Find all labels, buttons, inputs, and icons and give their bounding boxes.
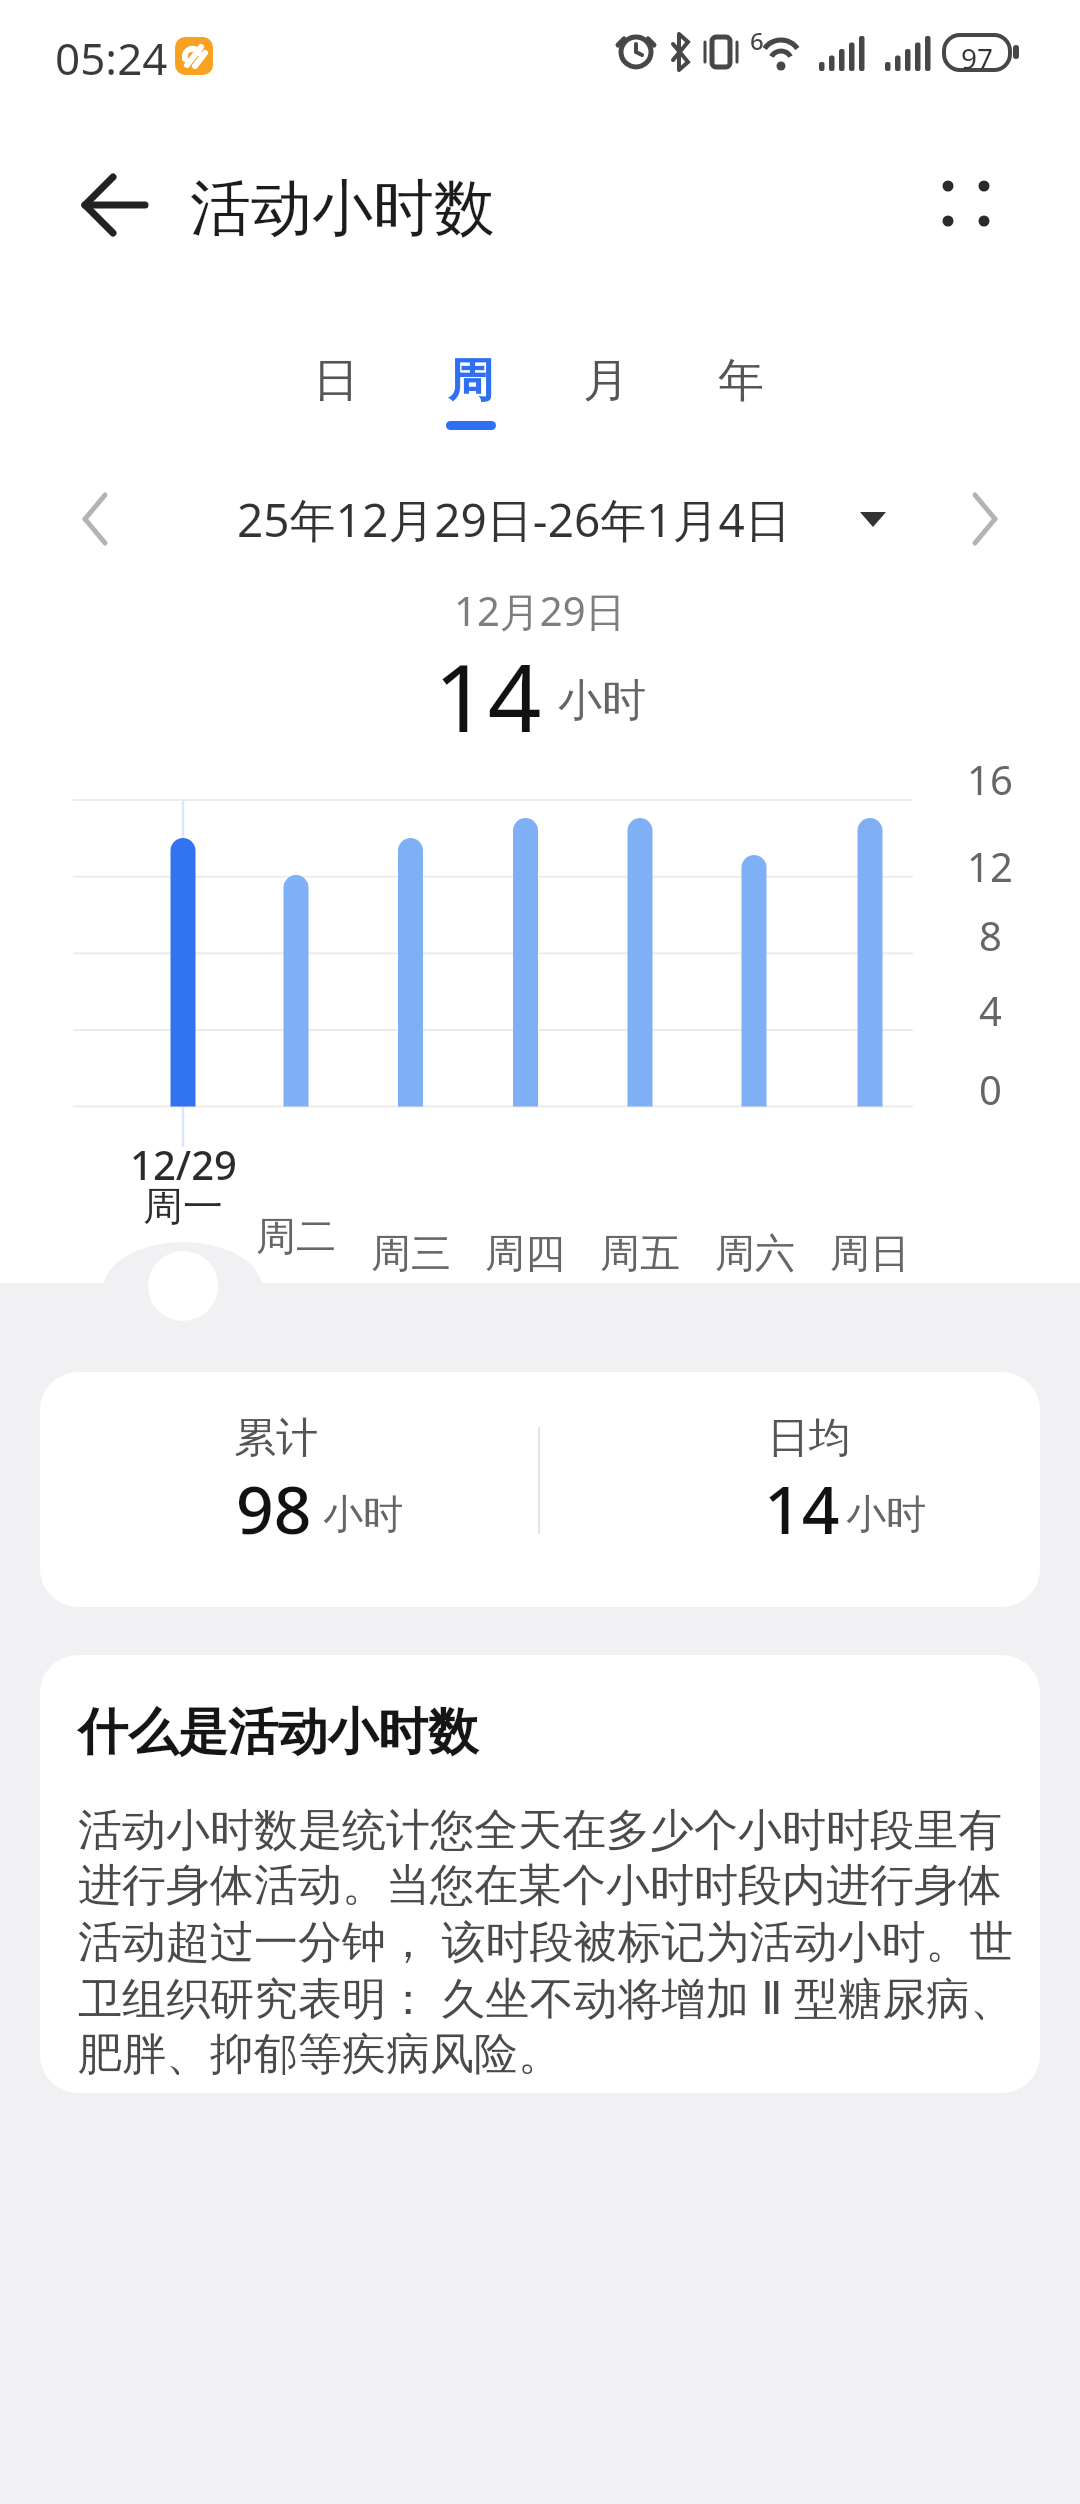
staticText: 日: [313, 352, 359, 410]
staticText: 4: [979, 983, 1002, 1037]
button[interactable]: 日: [281, 340, 391, 440]
staticText: 周六: [715, 1228, 795, 1278]
staticText: 周一: [143, 1181, 223, 1231]
button[interactable]: [60, 485, 130, 555]
button[interactable]: 月: [551, 340, 661, 440]
staticText: 年: [718, 352, 764, 410]
staticText: 什么是活动小时数: [78, 1701, 478, 1764]
staticText: 小时: [846, 1489, 926, 1539]
button[interactable]: [920, 160, 1012, 250]
staticText: 周四: [485, 1228, 565, 1278]
button[interactable]: 年: [686, 340, 796, 440]
staticText: 活动小时数: [190, 170, 495, 247]
staticText: 97: [961, 39, 994, 77]
button[interactable]: 周: [416, 340, 526, 440]
staticText: 6: [750, 24, 764, 57]
staticText: 12: [967, 839, 1013, 893]
staticText: 日均: [767, 1412, 851, 1465]
staticText: 周: [448, 352, 494, 410]
staticText: 活动小时数是统计您全天在多少个小时时段里有 进行身体活动。当您在某个小时时段内进…: [78, 1803, 1014, 2082]
staticText: 周日: [830, 1228, 910, 1278]
staticText: 小时: [323, 1489, 403, 1539]
button[interactable]: [60, 160, 150, 250]
staticText: 0: [979, 1062, 1002, 1116]
button[interactable]: 什么是活动小时数: [40, 1655, 1040, 2093]
staticText: 05:24: [55, 28, 168, 88]
button[interactable]: [950, 485, 1020, 555]
staticText: 12/29: [130, 1137, 237, 1191]
staticText: 8: [979, 908, 1002, 962]
staticText: 累计: [234, 1412, 318, 1465]
staticText: 16: [967, 752, 1013, 806]
staticText: 25年12月29日-26年1月4日: [237, 488, 791, 550]
staticText: 98: [236, 1463, 312, 1553]
staticText: 周三: [371, 1228, 451, 1278]
staticText: 月: [583, 352, 629, 410]
staticText: 周二: [256, 1211, 336, 1261]
button[interactable]: 累计: [40, 1372, 1040, 1607]
staticText: 小时: [558, 673, 646, 728]
staticText: 14: [764, 1463, 840, 1553]
staticText: 12月29日: [454, 583, 626, 638]
staticText: 周五: [600, 1228, 680, 1278]
button[interactable]: 25年12月29日-26年1月4日: [0, 488, 1054, 550]
staticText: 14: [434, 632, 542, 746]
